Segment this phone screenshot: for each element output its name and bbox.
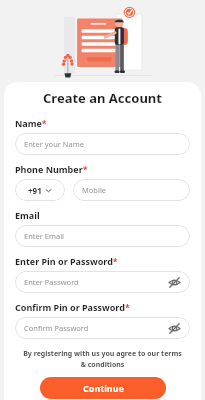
staticText: Enter Pin or Password* xyxy=(15,255,118,267)
button[interactable]: Enter your Name xyxy=(15,133,190,155)
staticText: Name* xyxy=(15,117,47,129)
button[interactable]: Show password xyxy=(168,322,181,335)
button[interactable]: Mobile xyxy=(73,179,190,201)
staticText: Continue xyxy=(83,382,124,394)
staticText: Enter Email xyxy=(24,231,65,241)
staticText: Enter Password xyxy=(24,277,79,287)
button[interactable]: Show password xyxy=(168,276,181,289)
button[interactable]: +91 xyxy=(15,179,65,201)
staticText: +91 xyxy=(28,185,42,196)
staticText: Confirm Pin or Password* xyxy=(15,301,130,313)
staticText: Mobile xyxy=(82,185,107,195)
staticText: Phone Number* xyxy=(15,163,88,175)
staticText: Confirm Password xyxy=(24,323,89,333)
button[interactable]: Enter Email xyxy=(15,225,190,247)
staticText: Create an Account xyxy=(43,89,162,107)
staticText: Email xyxy=(15,209,40,221)
button[interactable]: Enter Password xyxy=(15,271,190,293)
staticText: By registering with us you agree to our … xyxy=(21,349,184,369)
button[interactable]: Confirm Password xyxy=(15,317,190,339)
button[interactable]: Continue xyxy=(40,377,166,399)
staticText: Enter your Name xyxy=(24,139,84,149)
